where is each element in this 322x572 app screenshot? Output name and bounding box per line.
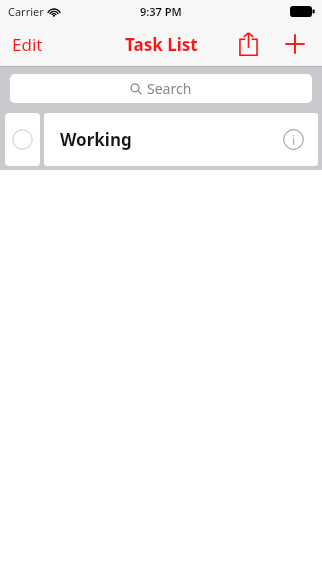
button[interactable]: Task details <box>279 125 308 154</box>
staticText: Search <box>147 79 192 98</box>
staticText: Working <box>60 128 132 151</box>
button[interactable]: Toggle complete <box>5 113 40 166</box>
staticText: Task List <box>125 33 198 56</box>
button[interactable]: Share <box>233 28 264 60</box>
staticText: i <box>292 132 296 148</box>
button[interactable]: Add task <box>278 29 312 59</box>
staticText: Carrier <box>8 4 44 19</box>
button[interactable]: Edit <box>0 25 55 64</box>
button[interactable]: Working <box>44 113 318 166</box>
button[interactable]: Search <box>10 74 312 103</box>
staticText: 9:37 PM <box>140 4 182 19</box>
staticText: Edit <box>12 33 43 56</box>
